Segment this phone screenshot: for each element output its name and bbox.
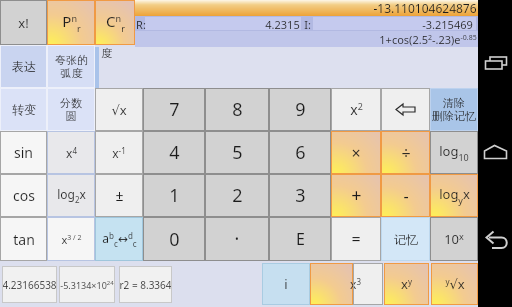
button[interactable]: Cnr: [95, 0, 135, 45]
button[interactable]: +: [331, 174, 381, 217]
staticText: 7: [169, 97, 180, 122]
staticText: 夸张的 弧度: [55, 53, 88, 80]
button[interactable]: 清除 删除记忆: [430, 88, 478, 131]
staticText: x3: [350, 276, 361, 292]
staticText: •: [235, 232, 239, 246]
staticText: x4: [66, 145, 77, 161]
button[interactable]: 分数 圆: [47, 88, 95, 131]
button[interactable]: y√x: [431, 263, 478, 305]
button[interactable]: abc↔dc: [95, 217, 143, 261]
staticText: 清除 删除记忆: [432, 96, 476, 124]
staticText: 记忆: [394, 232, 418, 247]
button[interactable]: 1: [143, 174, 205, 217]
button[interactable]: ×: [331, 131, 381, 174]
button[interactable]: 8: [205, 88, 269, 131]
staticText: 2: [232, 183, 243, 208]
staticText: logyx: [439, 185, 470, 206]
button[interactable]: 度: [95, 47, 478, 88]
staticText: 分数 圆: [60, 96, 82, 123]
button[interactable]: =: [331, 217, 381, 261]
button[interactable]: x2: [331, 88, 381, 131]
staticText: Pnr: [62, 11, 81, 34]
staticText: -3.215469: [422, 17, 473, 32]
button[interactable]: 4.23166538: [2, 266, 57, 303]
staticText: ÷: [401, 142, 411, 164]
staticText: 3: [295, 183, 306, 208]
staticText: y√x: [445, 275, 465, 293]
staticText: √x: [111, 101, 127, 119]
button[interactable]: tan: [0, 217, 47, 261]
button[interactable]: •: [205, 217, 269, 261]
button[interactable]: x3: [353, 263, 383, 305]
staticText: 4.2315: [265, 17, 300, 32]
button[interactable]: log2x: [47, 174, 95, 217]
staticText: I:: [304, 17, 311, 32]
button[interactable]: 记忆: [381, 217, 430, 261]
button[interactable]: 2: [205, 174, 269, 217]
button[interactable]: x4: [47, 131, 95, 174]
button[interactable]: 6: [269, 131, 331, 174]
button[interactable]: 转变: [0, 88, 47, 131]
button[interactable]: cos: [0, 174, 47, 217]
staticText: -13.110104624876: [373, 0, 477, 16]
staticText: -5.3134×1024: [60, 279, 114, 291]
staticText: +: [351, 183, 362, 208]
staticText: 度: [101, 46, 112, 60]
staticText: tan: [13, 230, 35, 249]
staticText: -: [403, 185, 409, 207]
button[interactable]: xy: [384, 263, 429, 305]
staticText: log2x: [57, 186, 86, 205]
staticText: x!: [18, 14, 29, 32]
button[interactable]: logyx: [430, 174, 478, 217]
staticText: x2: [350, 100, 363, 119]
staticText: cos: [13, 186, 35, 205]
staticText: log10: [439, 142, 469, 163]
button[interactable]: x3 / 2: [47, 217, 95, 261]
button[interactable]: 4: [143, 131, 205, 174]
button[interactable]: -: [381, 174, 430, 217]
button[interactable]: 夸张的 弧度: [47, 45, 95, 88]
button[interactable]: r2 = 8.3364: [119, 266, 172, 303]
button[interactable]: Pnr: [47, 0, 95, 45]
staticText: 8: [232, 97, 243, 122]
button[interactable]: x-1: [95, 131, 143, 174]
button[interactable]: [310, 263, 353, 305]
staticText: 6: [295, 140, 306, 165]
staticText: 9: [295, 97, 306, 122]
staticText: 4: [169, 140, 180, 165]
button[interactable]: 10x: [430, 217, 478, 261]
button[interactable]: 0: [143, 217, 205, 261]
button[interactable]: 9: [269, 88, 331, 131]
staticText: abc↔dc: [102, 230, 137, 249]
button[interactable]: 7: [143, 88, 205, 131]
button[interactable]: 5: [205, 131, 269, 174]
button[interactable]: x!: [0, 0, 47, 45]
staticText: 转变: [12, 102, 36, 117]
staticText: 5: [232, 140, 243, 165]
staticText: R:: [136, 17, 146, 32]
button[interactable]: -5.3134×1024: [59, 266, 115, 303]
staticText: 1+cos(2.52-.23)e-0.85: [379, 32, 477, 47]
staticText: x-1: [112, 145, 126, 161]
button[interactable]: 3: [269, 174, 331, 217]
button[interactable]: [478, 0, 512, 307]
button[interactable]: 表达: [0, 45, 47, 88]
button[interactable]: [381, 88, 430, 131]
staticText: 0: [169, 227, 180, 252]
button[interactable]: i: [262, 263, 310, 305]
button[interactable]: E: [269, 217, 331, 261]
staticText: 1: [169, 183, 180, 208]
button[interactable]: log10: [430, 131, 478, 174]
staticText: E: [296, 228, 305, 250]
button[interactable]: sin: [0, 131, 47, 174]
button[interactable]: ÷: [381, 131, 430, 174]
button[interactable]: √x: [95, 88, 143, 131]
button[interactable]: ±: [95, 174, 143, 217]
staticText: 4.23166538: [2, 278, 57, 292]
staticText: r2 = 8.3364: [119, 278, 172, 292]
staticText: Cnr: [106, 11, 125, 34]
staticText: sin: [14, 143, 33, 162]
staticText: 10x: [444, 230, 464, 248]
staticText: x3 / 2: [61, 232, 82, 247]
staticText: 表达: [12, 59, 36, 74]
